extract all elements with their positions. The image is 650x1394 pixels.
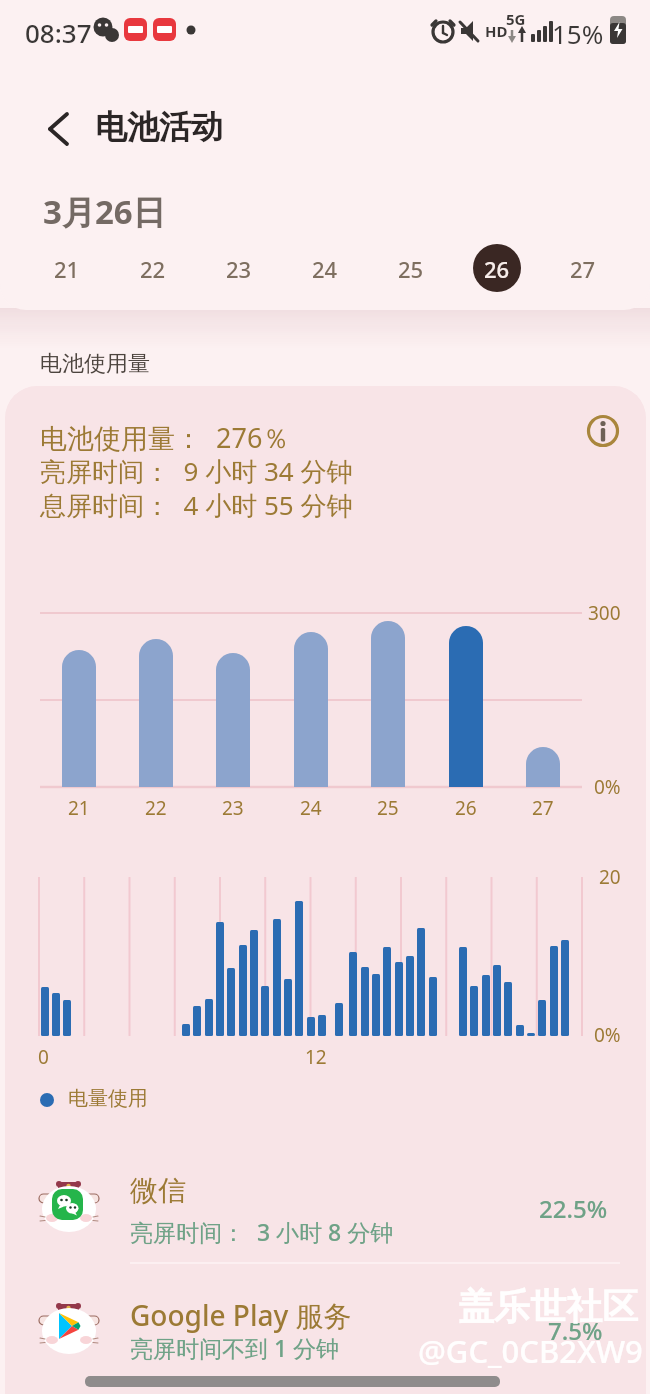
staticText: 26 <box>455 795 477 821</box>
staticText: 7.5% <box>548 1314 603 1347</box>
staticText: 亮屏时间不到 1 分钟 <box>130 1332 340 1363</box>
button[interactable]: 27 <box>549 248 617 290</box>
staticText: 21 <box>54 254 80 284</box>
staticText: 27 <box>570 254 596 284</box>
staticText: 20 <box>599 864 621 890</box>
staticText: 25 <box>398 254 424 284</box>
staticText: 0% <box>594 774 621 800</box>
staticText: 5G <box>506 9 526 29</box>
staticText: 电池使用量 <box>40 350 150 378</box>
staticText: 12 <box>305 1044 327 1070</box>
staticText: 22 <box>140 254 166 284</box>
staticText: 亮屏时间： 9 小时 34 分钟 <box>40 453 353 489</box>
staticText: 22 <box>145 795 167 821</box>
staticText: 电池活动 <box>95 107 223 147</box>
button[interactable] <box>0 1278 650 1394</box>
staticText: 电量使用 <box>68 1086 148 1111</box>
button[interactable] <box>30 100 86 156</box>
staticText: 22.5% <box>539 1192 608 1225</box>
staticText: 24 <box>300 795 322 821</box>
staticText: 25 <box>377 795 399 821</box>
button[interactable] <box>578 406 628 456</box>
staticText: 微信 <box>130 1173 186 1208</box>
staticText: 23 <box>226 254 252 284</box>
button[interactable]: 26 <box>463 248 531 290</box>
staticText: 300 <box>588 600 621 626</box>
staticText: @GC_0CB2XW9 <box>418 1330 643 1372</box>
staticText: 27 <box>532 795 554 821</box>
staticText: 21 <box>68 795 90 821</box>
button[interactable]: 21 <box>33 248 101 290</box>
button[interactable] <box>0 1155 650 1263</box>
staticText: 电池使用量： 276％ <box>40 419 290 456</box>
button[interactable]: 24 <box>291 248 359 290</box>
staticText: Google Play 服务 <box>130 1296 352 1334</box>
staticText: 24 <box>312 254 338 284</box>
staticText: HD <box>485 21 508 41</box>
staticText: 亮屏时间： 3 小时 8 分钟 <box>130 1216 394 1247</box>
staticText: 0 <box>38 1044 49 1070</box>
staticText: 15% <box>552 16 604 51</box>
staticText: 23 <box>222 795 244 821</box>
button[interactable]: 23 <box>205 248 273 290</box>
staticText: 08:37 <box>25 15 92 50</box>
button[interactable]: 22 <box>119 248 187 290</box>
staticText: 0% <box>594 1022 621 1048</box>
staticText: 息屏时间： 4 小时 55 分钟 <box>40 487 353 523</box>
staticText: 3月26日 <box>43 189 166 234</box>
staticText: 盖乐世社区 <box>458 1284 638 1329</box>
button[interactable]: 25 <box>377 248 445 290</box>
staticText: 26 <box>484 254 510 284</box>
